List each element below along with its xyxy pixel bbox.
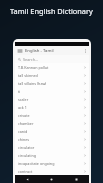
button[interactable]: ack 1 [15,103,89,111]
staticText: scaler [18,97,29,102]
button[interactable]: incapacitate ongoing [15,159,89,167]
button[interactable]: crivate [15,111,89,119]
button[interactable]: chines [15,135,89,143]
button[interactable]: More options [82,49,89,53]
staticText: chamber [18,121,34,126]
button[interactable]: circulator [15,143,89,151]
staticText: incapacitate ongoing [18,161,55,166]
button[interactable]: Home [39,175,64,183]
staticText: canid [18,129,28,134]
staticText: circulating [18,153,37,158]
staticText: Search... [23,57,39,62]
button[interactable]: Open navigation menu [15,49,25,53]
button[interactable]: tall skinned [15,71,89,79]
staticText: contract [18,169,33,174]
staticText: crivate [18,113,30,118]
button[interactable]: Recent apps [64,175,89,183]
button[interactable]: tall villains (hawl [15,79,89,87]
staticText: tall skinned [18,73,38,78]
button[interactable]: Back [15,175,39,183]
button[interactable]: Search... [15,55,89,63]
staticText: tall villains (hawl [18,81,47,86]
button[interactable]: scaler [15,95,89,103]
staticText: T.B.Kannan pollut [18,65,49,70]
staticText: ti [18,89,21,94]
staticText: ack 1 [18,105,27,110]
button[interactable]: circulating [15,151,89,159]
staticText: chines [18,137,30,142]
staticText: Tamil English Dictionary [10,6,93,16]
button[interactable]: T.B.Kannan pollut [15,63,89,71]
button[interactable]: ti [15,87,89,95]
staticText: circulator [18,145,35,150]
button[interactable]: canid [15,127,89,135]
staticText: English - Tamil [25,48,54,54]
button[interactable]: chamber [15,119,89,127]
button[interactable]: contract [15,167,89,175]
